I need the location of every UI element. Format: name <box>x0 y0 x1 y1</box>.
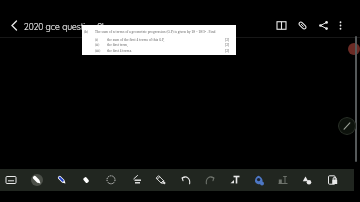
button[interactable]: Lasso select <box>101 170 121 190</box>
staticText: [2] <box>225 38 230 42</box>
staticText: The sum of n terms of a geometric progre… <box>95 30 216 34</box>
button[interactable]: Redo <box>200 170 220 190</box>
button[interactable]: Share <box>314 14 333 36</box>
button[interactable]: Back <box>5 13 23 37</box>
button[interactable]: More options <box>331 14 350 36</box>
button[interactable]: Highlighter <box>52 170 72 190</box>
button[interactable]: Pen colour <box>348 43 360 55</box>
staticText: (i) <box>95 38 99 42</box>
button[interactable]: 2020 gce question 9b <box>24 21 108 32</box>
staticText: (b) <box>84 30 89 34</box>
button[interactable]: Text <box>225 170 245 190</box>
button[interactable]: Undo <box>176 170 196 190</box>
button[interactable]: Pen <box>27 170 47 190</box>
button[interactable]: Write <box>151 170 171 190</box>
button[interactable]: Eraser <box>76 170 96 190</box>
button[interactable]: Lock <box>323 170 343 190</box>
staticText: (iii) <box>95 49 101 53</box>
button[interactable]: Straighten <box>127 170 147 190</box>
staticText: [2] <box>225 49 230 53</box>
button[interactable]: Align <box>273 170 293 190</box>
button[interactable]: Pen <box>338 117 356 135</box>
staticText: (ii) <box>95 43 100 47</box>
button[interactable]: Reader view <box>272 14 291 36</box>
staticText: [2] <box>225 43 230 47</box>
button[interactable]: Page <box>1 170 21 190</box>
button[interactable]: Shapes <box>297 170 317 190</box>
button[interactable]: AI assist <box>249 170 269 190</box>
button[interactable]: Attach <box>293 14 312 36</box>
staticText: the sum of the first 4 terms of this G.P… <box>107 38 165 42</box>
staticText: the first term, <box>107 43 128 47</box>
staticText: the first 4 terms. <box>107 49 132 53</box>
